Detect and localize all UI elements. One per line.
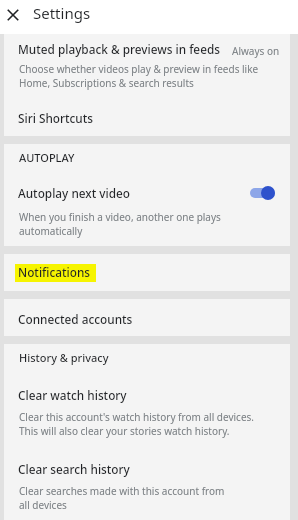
button[interactable]: Autoplay next video: [4, 180, 290, 246]
button[interactable]: Connected accounts: [4, 299, 290, 336]
staticText: Autoplay next video: [18, 185, 131, 201]
staticText: Always on: [232, 44, 280, 58]
staticText: AUTOPLAY: [19, 150, 75, 165]
staticText: Connected accounts: [18, 311, 133, 327]
button[interactable]: Notifications: [4, 254, 290, 291]
staticText: Clear watch history: [18, 387, 127, 403]
button[interactable]: Autoplay next video toggle: [250, 185, 280, 201]
button[interactable]: Close: [2, 4, 24, 26]
staticText: Clear this account's watch history from …: [19, 410, 255, 438]
staticText: Clear search history: [18, 461, 130, 477]
staticText: Muted playback & previews in feeds: [18, 41, 220, 57]
staticText: Notifications: [18, 264, 91, 280]
staticText: When you finish a video, another one pla…: [19, 210, 221, 238]
staticText: Settings: [33, 3, 91, 23]
button[interactable]: Siri Shortcuts: [4, 94, 290, 136]
button[interactable]: Clear search history: [4, 460, 290, 520]
staticText: Siri Shortcuts: [18, 110, 93, 126]
staticText: Choose whether videos play & preview in …: [19, 62, 259, 90]
button[interactable]: Clear watch history: [4, 386, 290, 442]
staticText: History & privacy: [19, 350, 109, 365]
button[interactable]: Muted playback & previews in feeds: [4, 34, 290, 94]
staticText: Clear searches made with this account fr…: [19, 484, 225, 512]
